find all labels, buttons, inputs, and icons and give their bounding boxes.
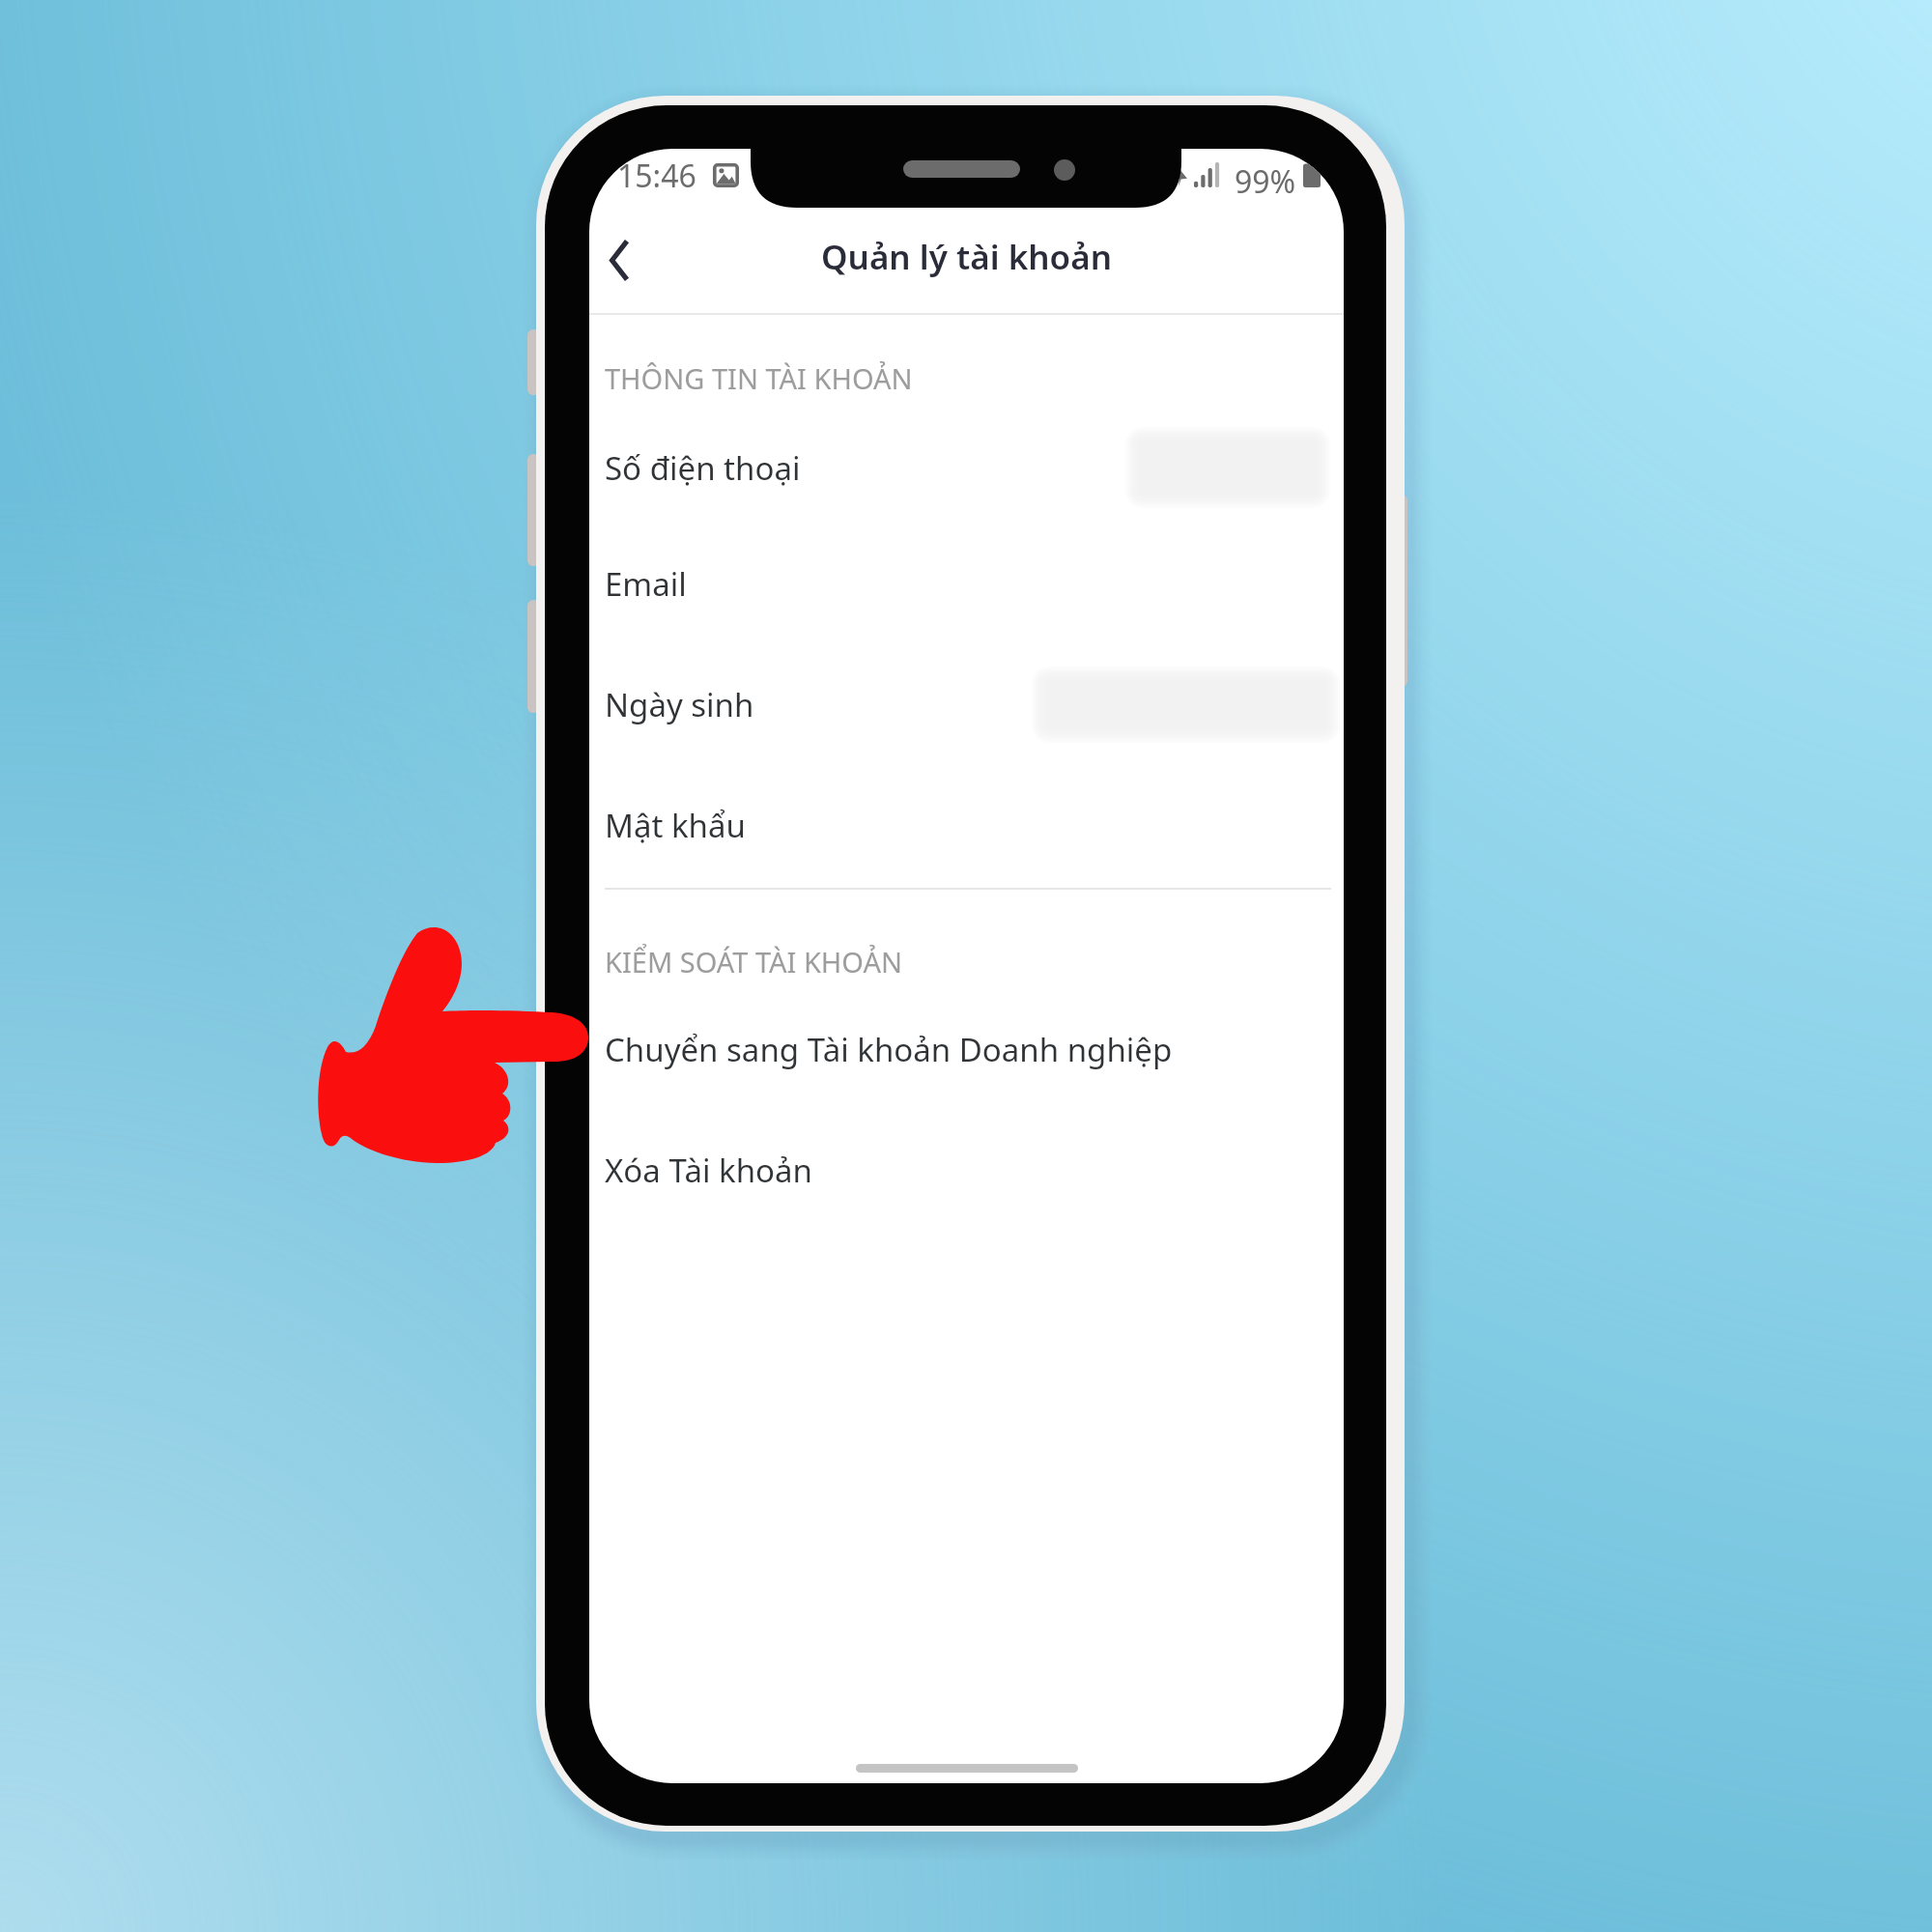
button[interactable]: Số điện thoại: [589, 408, 1344, 527]
button[interactable]: Xóa Tài khoản: [589, 1110, 1344, 1230]
staticText: Số điện thoại: [605, 446, 801, 490]
staticText: 15:46: [617, 155, 696, 197]
staticText: Ngày sinh: [605, 683, 754, 726]
staticText: THÔNG TIN TÀI KHOẢN: [605, 359, 913, 397]
staticText: 99%: [1235, 160, 1296, 203]
button[interactable]: Email: [589, 524, 1344, 643]
staticText: Quản lý tài khoản: [821, 234, 1112, 280]
staticText: Xóa Tài khoản: [605, 1149, 812, 1192]
button[interactable]: Chuyển sang Tài khoản Doanh nghiệp: [589, 989, 1344, 1109]
button[interactable]: Ngày sinh: [589, 644, 1344, 764]
staticText: Email: [605, 562, 687, 606]
staticText: KIỂM SOÁT TÀI KHOẢN: [605, 943, 902, 980]
button[interactable]: Back: [589, 220, 654, 299]
staticText: Mật khẩu: [605, 804, 746, 847]
staticText: Chuyển sang Tài khoản Doanh nghiệp: [605, 1028, 1173, 1071]
button[interactable]: Mật khẩu: [589, 765, 1344, 885]
